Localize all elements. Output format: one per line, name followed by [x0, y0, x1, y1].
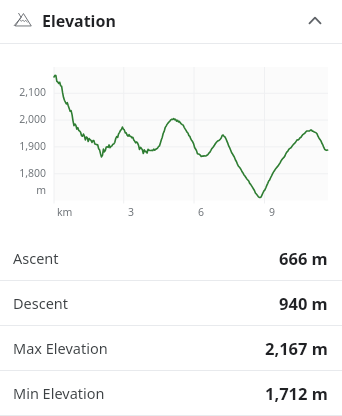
button[interactable]: Min Elevation — [0, 371, 342, 416]
button[interactable]: Elevation — [0, 0, 342, 43]
button[interactable]: Max Elevation — [0, 326, 342, 371]
staticText: Min Elevation — [13, 383, 105, 403]
staticText: 1,712 m — [265, 382, 328, 404]
staticText: 9 — [269, 205, 276, 219]
staticText: Max Elevation — [13, 338, 108, 358]
staticText: 2,100 — [0, 85, 46, 99]
staticText: 940 m — [279, 292, 328, 314]
staticText: 1,900 — [0, 139, 46, 153]
staticText: 6 — [198, 205, 205, 219]
staticText: 1,800 — [0, 166, 46, 180]
staticText: 2,167 m — [265, 337, 328, 359]
staticText: Elevation — [42, 10, 116, 32]
staticText: m — [0, 183, 46, 197]
staticText: Descent — [13, 293, 69, 313]
button[interactable]: Collapse — [303, 10, 327, 34]
staticText: 666 m — [279, 247, 328, 269]
staticText: 3 — [128, 205, 135, 219]
staticText: Ascent — [13, 248, 59, 268]
staticText: 2,000 — [0, 112, 46, 126]
button[interactable]: Ascent — [0, 236, 342, 281]
button[interactable]: Descent — [0, 281, 342, 326]
staticText: km — [57, 205, 73, 219]
